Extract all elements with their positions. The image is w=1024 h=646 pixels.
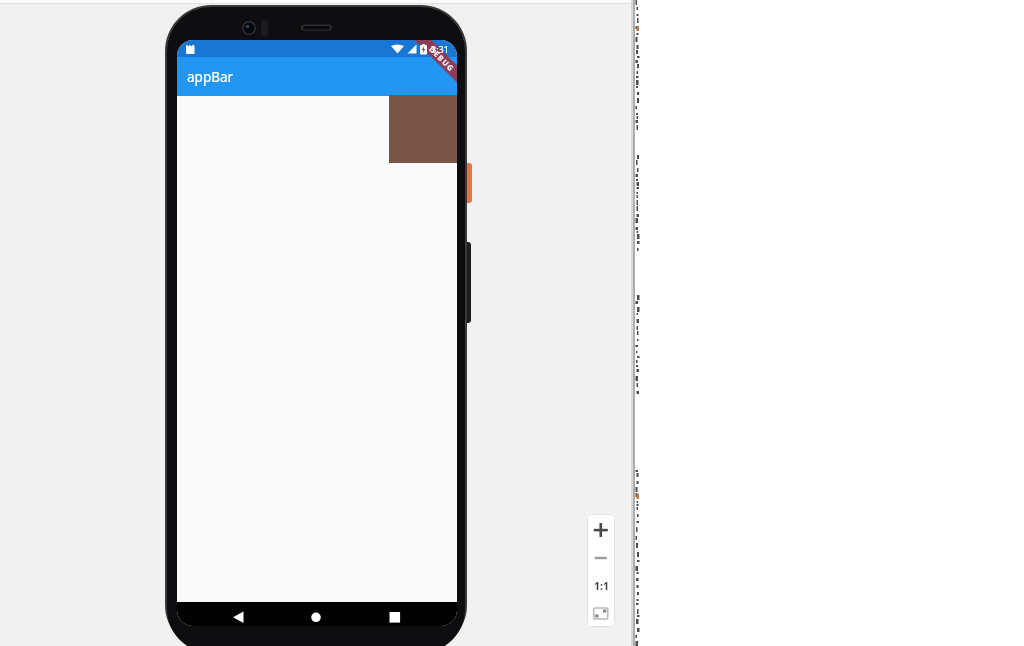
button[interactable] xyxy=(300,604,332,626)
button[interactable]: 1:1 xyxy=(587,576,615,596)
staticText: appBar xyxy=(187,68,234,86)
button[interactable] xyxy=(587,516,615,544)
button[interactable] xyxy=(587,598,615,624)
staticText: DEBUG xyxy=(427,44,457,74)
button[interactable] xyxy=(587,546,615,572)
staticText: 3:31 xyxy=(431,43,449,55)
button[interactable] xyxy=(379,604,411,626)
button[interactable] xyxy=(177,57,457,96)
button[interactable] xyxy=(223,604,255,626)
staticText: 1:1 xyxy=(594,579,609,593)
